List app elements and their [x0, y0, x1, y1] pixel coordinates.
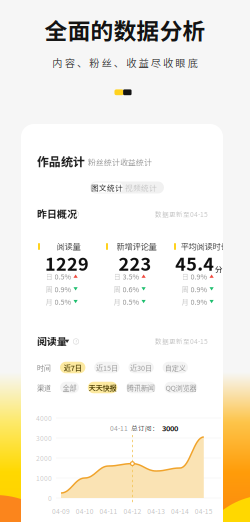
staticText: 新增评论量 — [116, 240, 156, 252]
button[interactable]: 粉丝统计 — [88, 156, 120, 168]
staticText: 周 — [181, 284, 188, 294]
button[interactable]: 视频统计 — [125, 182, 157, 192]
staticText: 2000 — [36, 453, 52, 463]
staticText: 04-13 — [147, 506, 165, 516]
staticText: 天天快报 — [88, 382, 116, 393]
staticText: 渠道 — [37, 382, 51, 393]
staticText: 04-12 — [123, 506, 141, 516]
staticText: 04-15 — [195, 506, 213, 516]
button[interactable]: 近7日 — [60, 362, 85, 373]
button[interactable]: 全部 — [60, 382, 79, 393]
button[interactable]: 天天快报 — [88, 382, 117, 393]
button[interactable]: 收益统计 — [120, 156, 152, 168]
staticText: 周 — [113, 284, 120, 294]
button[interactable]: 作品统计 — [37, 152, 85, 170]
staticText: 04-11 — [110, 423, 128, 433]
staticText: 腾讯新闻 — [127, 382, 155, 393]
staticText: 自定义 — [165, 362, 186, 373]
staticText: ? — [75, 210, 77, 217]
button[interactable]: 自定义 — [163, 362, 188, 373]
staticText: 0.6% — [122, 284, 139, 294]
button[interactable]: 腾讯新闻 — [126, 382, 156, 393]
staticText: 04-11 — [100, 506, 118, 516]
staticText: 45.4 — [175, 250, 214, 276]
button[interactable]: QQ浏览器 — [164, 382, 197, 393]
staticText: 阅读量 — [56, 240, 80, 252]
staticText: 总订阅： — [131, 423, 159, 433]
staticText: 日 — [45, 271, 52, 281]
staticText: 收益统计 — [120, 156, 152, 168]
staticText: 近30日 — [130, 362, 152, 373]
staticText: QQ浏览器 — [165, 382, 196, 393]
staticText: 近15日 — [96, 362, 118, 373]
button[interactable]: 近15日 — [94, 362, 120, 373]
button[interactable]: 近30日 — [128, 362, 154, 373]
staticText: 0 — [48, 493, 52, 503]
staticText: 3000 — [36, 433, 52, 443]
staticText: 视频统计 — [125, 182, 157, 193]
staticText: 作品统计 — [37, 152, 85, 170]
staticText: 0.9% — [190, 284, 207, 294]
staticText: 0.5% — [122, 296, 139, 307]
staticText: 月 — [45, 296, 52, 307]
staticText: 日 — [181, 271, 188, 281]
staticText: 日 — [113, 271, 120, 281]
staticText: 1229 — [45, 250, 89, 276]
staticText: 周 — [45, 284, 52, 294]
button[interactable]: 新增评论量 — [102, 234, 167, 309]
staticText: 1000 — [36, 473, 52, 483]
staticText: 3.5% — [122, 271, 139, 281]
staticText: 内容、粉丝、收益尽收眼底 — [52, 55, 198, 70]
staticText: 图文统计 — [91, 182, 123, 193]
staticText: 数据更新至04-15 — [155, 209, 208, 219]
staticText: ? — [75, 338, 77, 345]
staticText: 0.5% — [54, 296, 71, 307]
staticText: 223 — [118, 250, 151, 276]
staticText: 3000 — [162, 423, 178, 433]
staticText: 昨日概况 — [37, 206, 77, 221]
staticText: 04-10 — [76, 506, 94, 516]
staticText: 月 — [113, 296, 120, 307]
staticText: 04-14 — [171, 506, 189, 516]
button[interactable]: 平均阅读时长 — [170, 234, 235, 309]
staticText: 0.9% — [54, 284, 71, 294]
staticText: 全面的数据分析 — [44, 13, 205, 46]
staticText: 全部 — [62, 382, 76, 393]
staticText: 分钟 — [215, 263, 231, 275]
staticText: 平均阅读时长 — [180, 240, 228, 252]
staticText: 4000 — [36, 413, 52, 423]
staticText: 月 — [181, 296, 188, 307]
staticText: 0.9% — [190, 296, 207, 307]
staticText: 阅读量 — [37, 334, 67, 348]
button[interactable]: 阅读量 — [34, 234, 99, 309]
staticText: 近7日 — [64, 362, 82, 373]
staticText: 0.9% — [190, 271, 207, 281]
staticText: 0.5% — [54, 271, 71, 281]
button[interactable]: 图文统计 — [91, 182, 123, 192]
staticText: 04-09 — [52, 506, 70, 516]
staticText: 时间 — [37, 362, 51, 373]
staticText: 粉丝统计 — [88, 156, 120, 168]
staticText: 数据更新至04-15 — [155, 336, 208, 346]
